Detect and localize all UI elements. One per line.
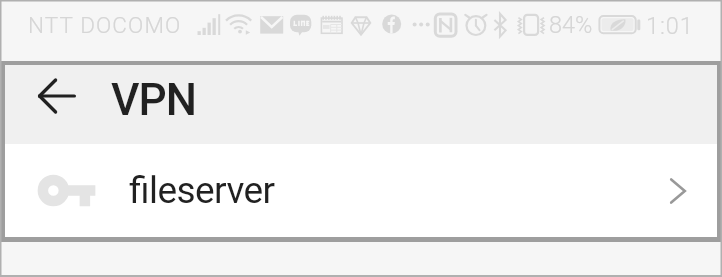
staticText: 1:01: [646, 12, 694, 40]
button[interactable]: Back: [33, 72, 81, 120]
staticText: VPN: [111, 74, 197, 126]
button[interactable]: fileserver: [5, 144, 717, 237]
staticText: fileserver: [129, 169, 275, 212]
staticText: NTT DOCOMO: [28, 12, 182, 38]
staticText: 84%: [549, 11, 593, 39]
